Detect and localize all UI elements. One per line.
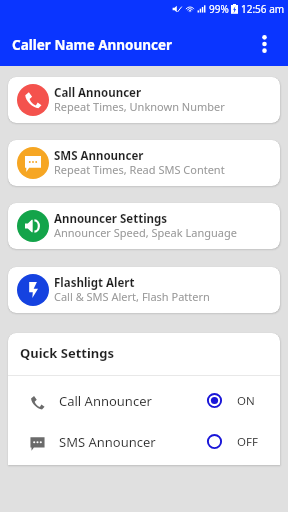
staticText: Repeat Times, Unknown Number	[54, 99, 225, 114]
button[interactable]: More options	[248, 29, 280, 61]
button[interactable]: SMS Announcer	[8, 420, 280, 461]
button[interactable]: SMS Announcer	[8, 140, 280, 186]
staticText: Call Announcer	[59, 392, 152, 410]
staticText: Caller Name Announcer	[12, 36, 173, 54]
staticText: Call & SMS Alert, Flash Pattern	[54, 289, 210, 304]
staticText: Flashligt Alert	[54, 275, 135, 291]
staticText: 12:56 am	[241, 2, 285, 16]
staticText: Quick Settings	[20, 344, 115, 362]
button[interactable]: Announcer Settings	[8, 203, 280, 249]
staticText: Repeat Times, Read SMS Content	[54, 162, 225, 177]
staticText: Announcer Speed, Speak Language	[54, 225, 237, 240]
staticText: SMS Announcer	[59, 433, 156, 451]
staticText: ON	[237, 393, 255, 409]
staticText: OFF	[237, 434, 258, 450]
button[interactable]: Call Announcer	[8, 77, 280, 123]
staticText: SMS Announcer	[54, 148, 144, 164]
button[interactable]: Call Announcer	[8, 379, 280, 420]
button[interactable]: Flashligt Alert	[8, 267, 280, 313]
staticText: Announcer Settings	[54, 211, 168, 227]
staticText: Call Announcer	[54, 85, 142, 101]
staticText: 99%	[209, 2, 229, 16]
